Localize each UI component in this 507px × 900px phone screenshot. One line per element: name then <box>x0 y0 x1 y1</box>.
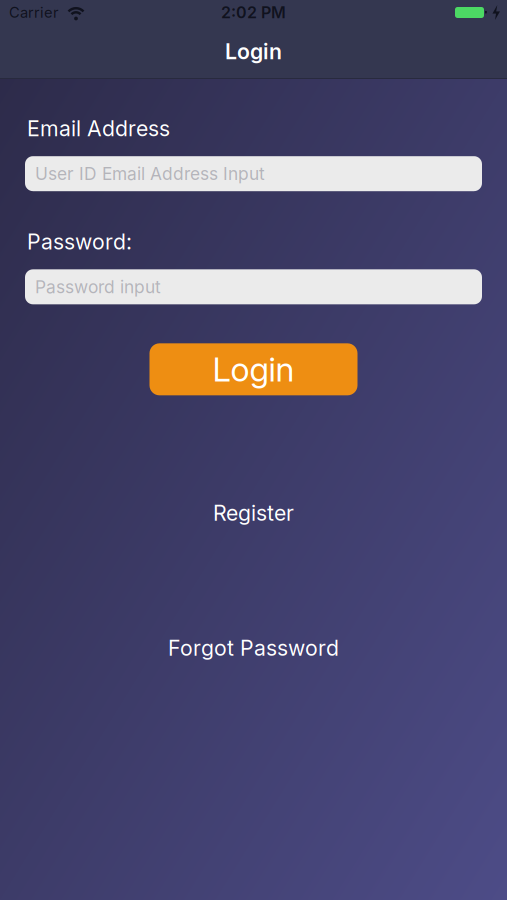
staticText: 2:02 PM <box>221 3 286 22</box>
staticText: Register <box>213 500 294 525</box>
button[interactable]: Forgot Password <box>168 635 339 661</box>
staticText: User ID Email Address Input <box>35 163 265 184</box>
staticText: Password: <box>27 229 132 254</box>
button[interactable]: Register <box>213 500 294 525</box>
staticText: Login <box>225 39 282 64</box>
staticText: Password input <box>35 277 161 297</box>
staticText: Login <box>212 350 294 389</box>
staticText: Email Address <box>27 116 170 141</box>
staticText: Carrier <box>9 4 59 21</box>
staticText: Forgot Password <box>168 635 339 661</box>
button[interactable]: Login <box>149 343 357 395</box>
